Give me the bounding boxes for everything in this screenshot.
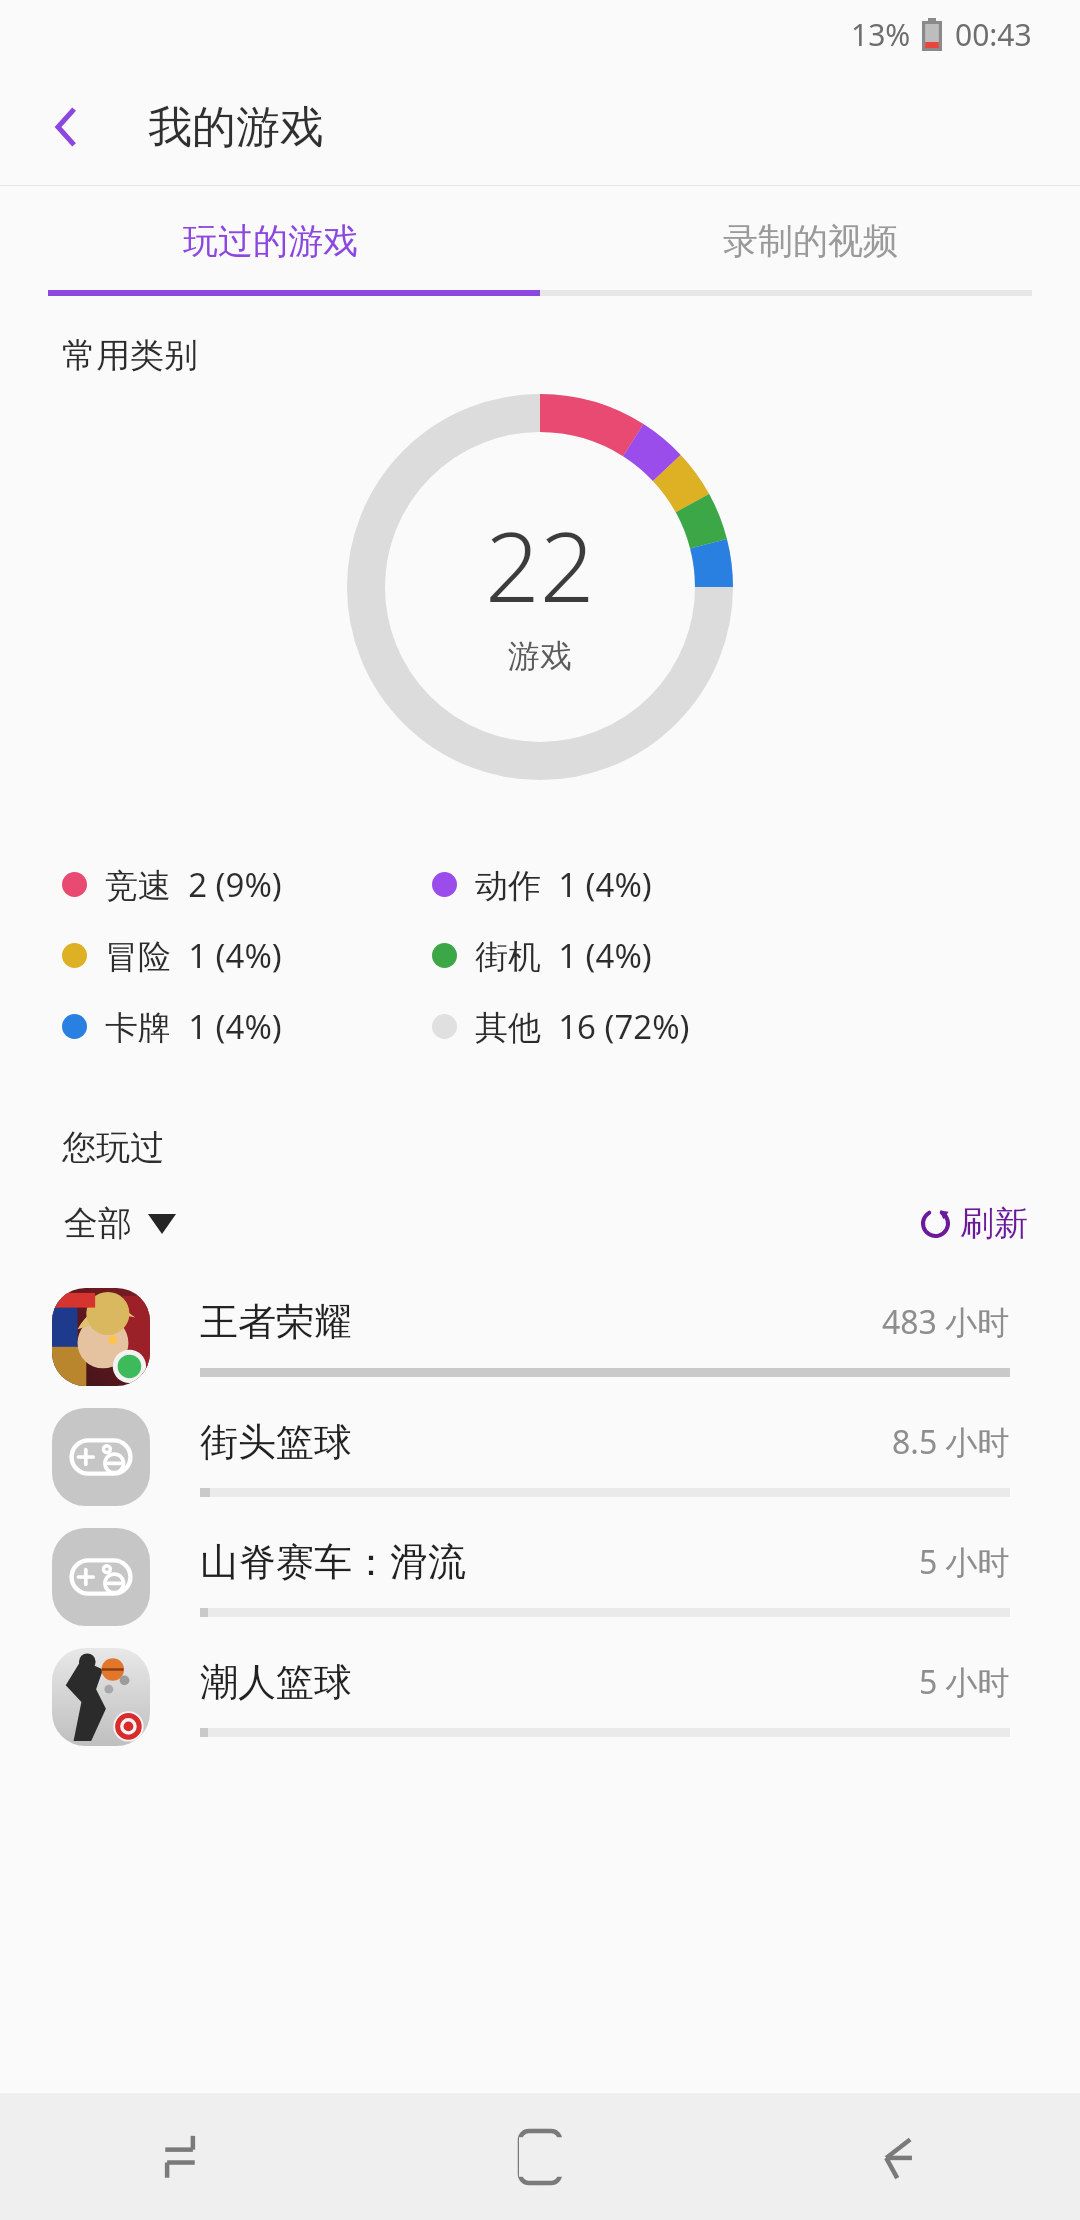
button[interactable]: 玩过的游戏 <box>0 186 540 296</box>
staticText: 街头篮球 <box>200 1418 352 1466</box>
staticText: 我的游戏 <box>148 100 324 155</box>
staticText: 潮人篮球 <box>200 1658 352 1706</box>
staticText: 483 小时 <box>882 1300 1010 1344</box>
staticText: 冒险 1 (4%) <box>105 933 282 978</box>
staticText: 常用类别 <box>62 334 198 377</box>
staticText: 其他 16 (72%) <box>475 1004 690 1049</box>
staticText: 00:43 <box>955 14 1032 55</box>
button[interactable]: Home <box>360 2093 720 2220</box>
staticText: 街机 1 (4%) <box>475 933 652 978</box>
staticText: 22 <box>485 499 595 630</box>
button[interactable]: Back <box>22 83 110 171</box>
staticText: 5 小时 <box>919 1540 1010 1584</box>
staticText: 竞速 2 (9%) <box>105 862 282 907</box>
staticText: 您玩过 <box>62 1126 164 1169</box>
staticText: 游戏 <box>508 636 572 676</box>
button[interactable]: 王者荣耀 <box>0 1277 1080 1397</box>
staticText: 山脊赛车：滑流 <box>200 1538 466 1586</box>
button[interactable]: Recents <box>0 2093 360 2220</box>
staticText: 5 小时 <box>919 1660 1010 1704</box>
button[interactable]: 录制的视频 <box>540 186 1080 296</box>
staticText: 13% <box>851 14 911 55</box>
button[interactable]: 街头篮球 <box>0 1397 1080 1517</box>
staticText: 录制的视频 <box>723 219 898 263</box>
button[interactable]: 全部 <box>62 1192 178 1255</box>
staticText: 刷新 <box>960 1202 1028 1245</box>
staticText: 卡牌 1 (4%) <box>105 1004 282 1049</box>
staticText: 玩过的游戏 <box>183 219 358 263</box>
staticText: 王者荣耀 <box>200 1298 352 1346</box>
staticText: 动作 1 (4%) <box>475 862 652 907</box>
button[interactable]: 潮人篮球 <box>0 1637 1080 1757</box>
button[interactable]: Back <box>720 2093 1080 2220</box>
staticText: 全部 <box>64 1202 132 1245</box>
staticText: 8.5 小时 <box>892 1420 1010 1464</box>
button[interactable]: 刷新 <box>915 1192 1032 1255</box>
button[interactable]: 山脊赛车：滑流 <box>0 1517 1080 1637</box>
